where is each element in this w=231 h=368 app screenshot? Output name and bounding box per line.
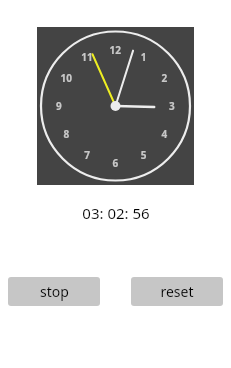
staticText: stop: [40, 282, 69, 301]
button[interactable]: stop: [8, 277, 100, 306]
staticText: reset: [160, 282, 194, 301]
button[interactable]: reset: [131, 277, 223, 306]
staticText: 03: 02: 56: [82, 203, 150, 223]
